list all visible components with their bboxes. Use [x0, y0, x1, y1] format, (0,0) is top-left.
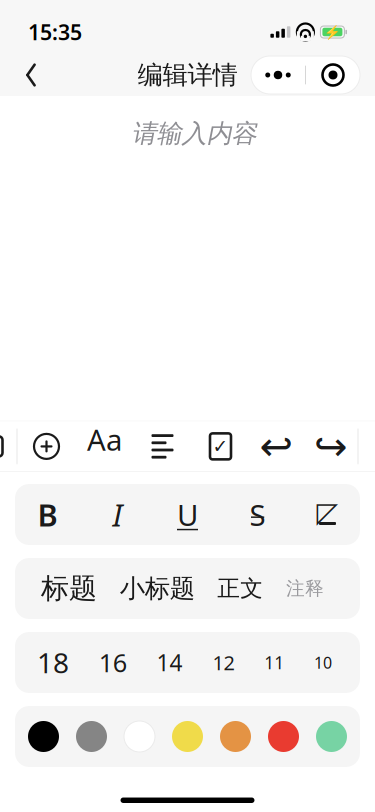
- button[interactable]: Keyboard: [0, 421, 16, 471]
- button[interactable]: Highlight: [296, 484, 358, 545]
- button[interactable]: Undo: [249, 421, 303, 471]
- button[interactable]: 正文: [217, 558, 263, 619]
- button[interactable]: Insert: [17, 421, 75, 471]
- button[interactable]: Close: [306, 59, 360, 91]
- button[interactable]: Green: [311, 706, 351, 767]
- button[interactable]: 小标题: [120, 558, 195, 619]
- staticText: I: [112, 494, 122, 535]
- staticText: B: [37, 494, 57, 535]
- button[interactable]: Text format: [75, 414, 133, 478]
- staticText: ⚡: [324, 24, 341, 40]
- staticText: 注释: [286, 577, 324, 600]
- staticText: S: [249, 495, 265, 534]
- staticText: 标题: [41, 571, 97, 606]
- staticText: 16: [99, 646, 127, 679]
- button[interactable]: 12: [212, 632, 234, 693]
- button[interactable]: 14: [157, 632, 183, 693]
- button[interactable]: Red: [263, 706, 303, 767]
- staticText: ↩: [259, 424, 293, 469]
- button[interactable]: 标题: [41, 558, 97, 619]
- button[interactable]: 10: [314, 632, 332, 693]
- button[interactable]: Yellow: [167, 706, 207, 767]
- staticText: 18: [37, 644, 69, 681]
- staticText: U: [177, 495, 198, 534]
- button[interactable]: I: [86, 484, 148, 545]
- button[interactable]: More: [251, 59, 305, 91]
- button[interactable]: Orange: [215, 706, 255, 767]
- button[interactable]: Black: [23, 706, 63, 767]
- button[interactable]: White: [119, 706, 159, 767]
- staticText: Aa: [87, 420, 122, 459]
- button[interactable]: 16: [99, 632, 127, 693]
- button[interactable]: Gray: [71, 706, 111, 767]
- button[interactable]: S: [226, 484, 288, 545]
- staticText: ◸: [316, 497, 338, 528]
- staticText: 正文: [217, 575, 263, 602]
- staticText: 15:35: [28, 18, 82, 46]
- staticText: 10: [314, 652, 332, 673]
- button[interactable]: Redo: [303, 421, 357, 471]
- button[interactable]: B: [16, 484, 78, 545]
- staticText: 小标题: [120, 573, 195, 604]
- staticText: 11: [264, 651, 284, 674]
- button[interactable]: 18: [37, 632, 69, 693]
- staticText: ✓: [212, 436, 228, 457]
- staticText: 编辑详情: [137, 59, 237, 90]
- button[interactable]: Alignment: [133, 421, 191, 471]
- staticText: ↩: [313, 424, 347, 469]
- button[interactable]: Checklist: [191, 421, 249, 471]
- staticText: 14: [157, 647, 183, 677]
- button[interactable]: U: [156, 484, 218, 545]
- staticText: 请输入内容: [131, 118, 256, 149]
- button[interactable]: 注释: [286, 558, 324, 619]
- button[interactable]: 11: [264, 632, 284, 693]
- staticText: 12: [212, 649, 234, 676]
- button[interactable]: Back: [8, 53, 54, 97]
